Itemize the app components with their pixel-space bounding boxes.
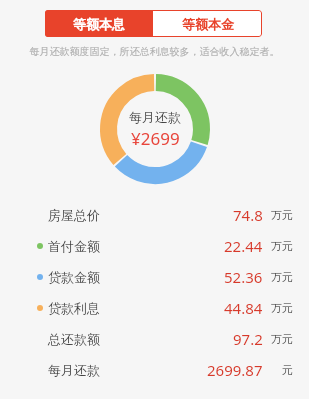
staticText: 每月还款额度固定，所还总利息较多，适合收入稳定者。	[0, 45, 309, 58]
button[interactable]: 等额本息	[45, 10, 153, 37]
staticText: 贷款利息	[48, 300, 100, 316]
staticText: 房屋总价	[48, 207, 100, 223]
staticText: 等额本息	[73, 16, 125, 32]
button[interactable]: 总还款额	[0, 323, 309, 354]
staticText: 总还款额	[48, 331, 100, 347]
staticText: 首付金额	[48, 238, 100, 254]
staticText: 万元	[271, 332, 293, 346]
button[interactable]: 贷款利息	[0, 292, 309, 323]
button[interactable]: 首付金额	[0, 230, 309, 261]
staticText: 每月还款	[48, 362, 100, 378]
button[interactable]: 每月还款	[0, 354, 309, 385]
staticText: 每月还款	[129, 109, 181, 125]
staticText: 22.44	[224, 236, 263, 256]
button[interactable]: 等额本金	[153, 10, 262, 37]
staticText: 万元	[271, 239, 293, 253]
staticText: 等额本金	[182, 16, 234, 32]
staticText: 贷款金额	[48, 269, 100, 285]
staticText: ¥2699	[131, 127, 180, 150]
staticText: 97.2	[233, 329, 263, 349]
staticText: 元	[282, 363, 293, 377]
staticText: 万元	[271, 270, 293, 284]
staticText: 44.84	[224, 298, 263, 318]
staticText: 2699.87	[207, 360, 263, 380]
staticText: 74.8	[233, 205, 263, 225]
staticText: 52.36	[224, 267, 263, 287]
staticText: 万元	[271, 301, 293, 315]
staticText: 万元	[271, 208, 293, 222]
button[interactable]: 房屋总价	[0, 199, 309, 230]
button[interactable]: 贷款金额	[0, 261, 309, 292]
